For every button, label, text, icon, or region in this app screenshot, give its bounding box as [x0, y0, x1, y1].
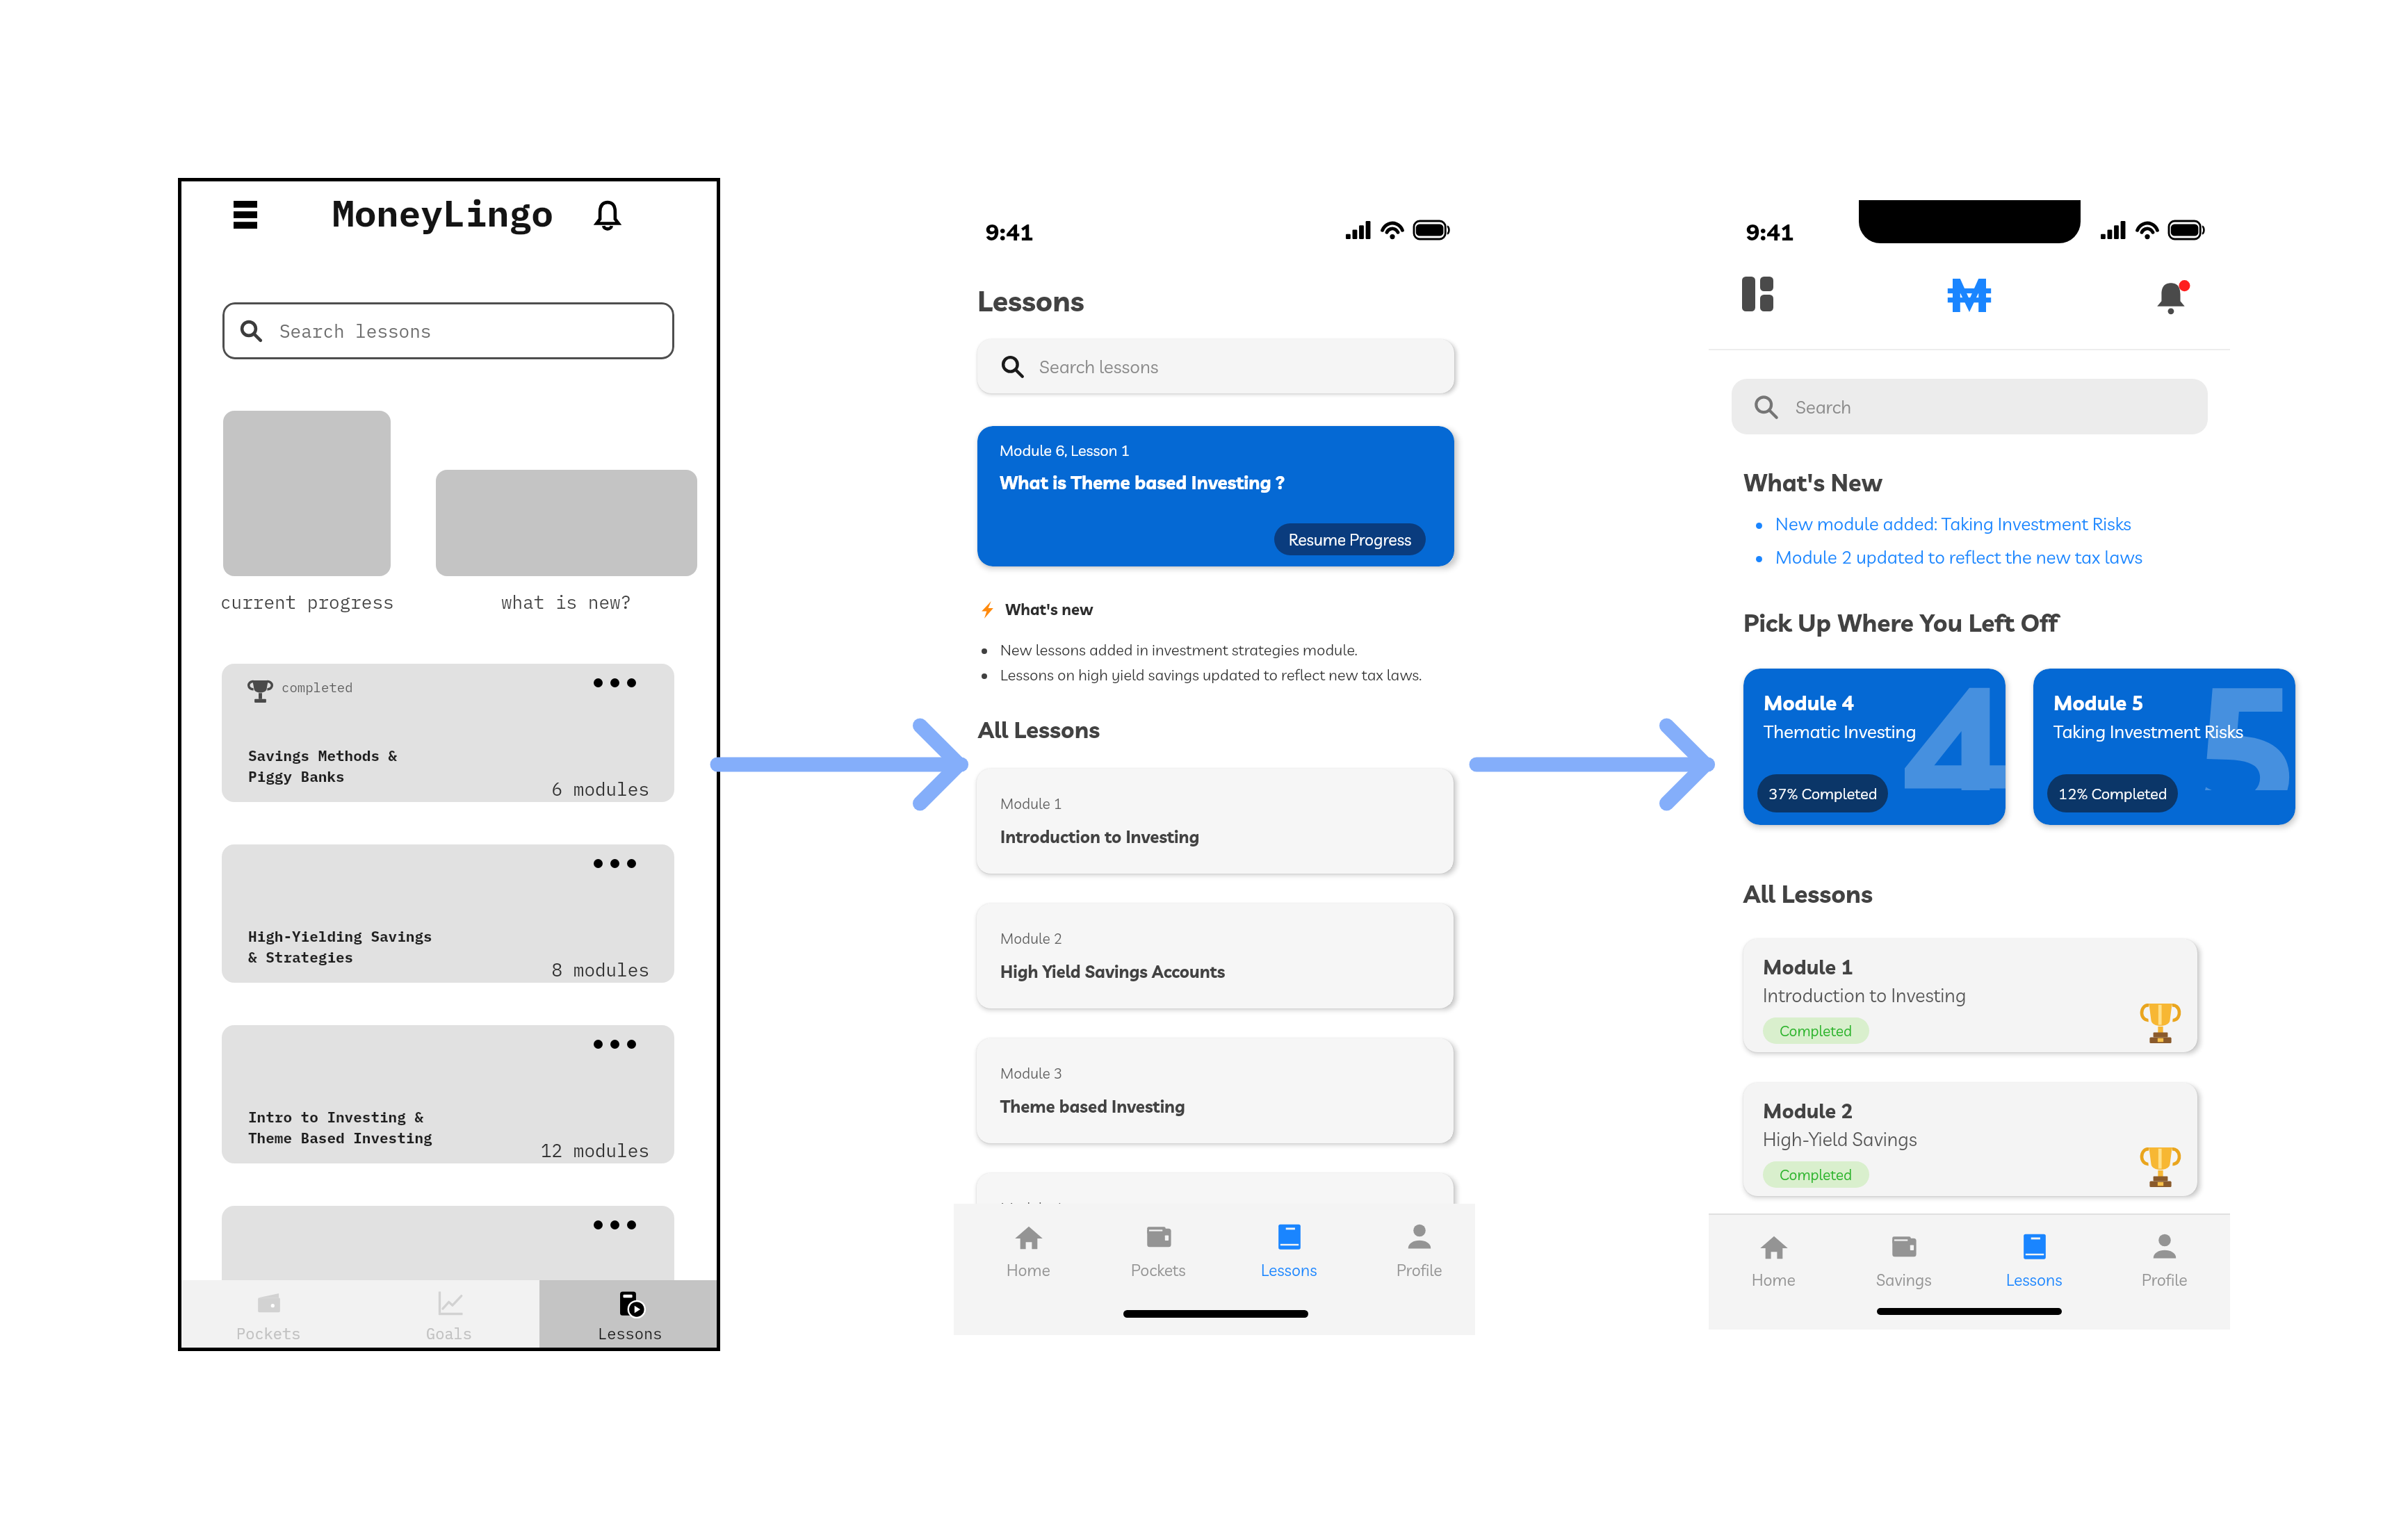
- staticText: Module 4: [1000, 1199, 1063, 1217]
- staticText: High Yield Savings Accounts: [1000, 961, 1226, 982]
- button[interactable]: [223, 411, 391, 576]
- staticText: Search lessons: [279, 319, 432, 343]
- button[interactable]: Module 1: [977, 769, 1454, 874]
- button[interactable]: Home: [963, 1223, 1093, 1292]
- staticText: Completed: [1780, 1166, 1853, 1184]
- button[interactable]: Module 3: [977, 1038, 1454, 1143]
- staticText: Search lessons: [1039, 355, 1159, 378]
- staticText: Module 2 updated to reflect the new tax …: [1775, 546, 2143, 569]
- button[interactable]: Search: [1732, 379, 2208, 434]
- staticText: 9:41: [986, 218, 1034, 246]
- staticText: Lessons on high yield savings updated to…: [1000, 665, 1422, 685]
- staticText: Module 6, Lesson 1: [1000, 441, 1130, 460]
- staticText: 5: [2189, 669, 2295, 790]
- staticText: Module 1: [1000, 794, 1063, 812]
- staticText: Module 2: [1763, 1098, 1853, 1123]
- button[interactable]: Lessons: [1969, 1232, 2099, 1302]
- staticText: High-Yielding Savings & Strategies: [248, 926, 432, 967]
- staticText: Savings: [1876, 1270, 1932, 1290]
- staticText: Profile: [2142, 1270, 2188, 1290]
- button[interactable]: [222, 1206, 674, 1344]
- button[interactable]: 5: [2033, 669, 2295, 825]
- staticText: completed: [282, 679, 353, 696]
- staticText: Intro to Investing & Theme Based Investi…: [248, 1107, 432, 1147]
- staticText: Introduction to Investing: [1000, 826, 1200, 847]
- staticText: Resume Progress: [1289, 530, 1412, 550]
- button[interactable]: Home: [1709, 1232, 1839, 1302]
- staticText: Lessons: [977, 283, 1084, 318]
- button[interactable]: Profile: [2099, 1232, 2230, 1302]
- staticText: Module 2: [1000, 929, 1063, 947]
- button[interactable]: Module 2: [1743, 1083, 2197, 1196]
- staticText: Module 3: [1000, 1064, 1063, 1082]
- button[interactable]: Resume Progress: [1274, 523, 1426, 555]
- button[interactable]: Notifications: [2154, 280, 2190, 318]
- staticText: what is new?: [501, 590, 632, 614]
- staticText: Introduction to Investing: [1763, 983, 1967, 1007]
- button[interactable]: completed: [222, 664, 674, 802]
- staticText: Savings Methods & Piggy Banks: [248, 746, 398, 786]
- staticText: Taking Investment Risks: [1000, 1231, 1195, 1252]
- staticText: 9:41: [1746, 218, 1794, 246]
- staticText: Thematic Investing: [1764, 720, 1917, 743]
- staticText: Pick Up Where You Left Off: [1743, 607, 2058, 638]
- staticText: Taking Investment Risks: [2053, 720, 2244, 743]
- staticText: What is Theme based Investing ?: [1000, 471, 1285, 494]
- button[interactable]: Module 2: [977, 903, 1454, 1008]
- button[interactable]: Savings: [1839, 1232, 1969, 1302]
- button[interactable]: 12% Completed: [2047, 774, 2178, 812]
- staticText: 37% Completed: [1768, 784, 1878, 803]
- button[interactable]: Profile: [1354, 1223, 1485, 1292]
- staticText: 6 modules: [475, 777, 649, 801]
- staticText: 12% Completed: [2058, 784, 2167, 803]
- staticText: Search: [1796, 395, 1852, 418]
- staticText: Completed: [1780, 1022, 1853, 1040]
- button[interactable]: High-Yielding Savings & Strategies: [222, 844, 674, 983]
- button[interactable]: Module 1: [1743, 939, 2197, 1052]
- staticText: 8 modules: [475, 958, 649, 981]
- staticText: 4: [1899, 669, 2006, 790]
- staticText: Lessons: [598, 1323, 662, 1343]
- button[interactable]: Module 4: [977, 1173, 1454, 1278]
- staticText: Home: [1007, 1260, 1050, 1280]
- button[interactable]: Search lessons: [222, 302, 674, 359]
- button[interactable]: Dashboard: [1742, 277, 1777, 311]
- button[interactable]: Notifications: [596, 200, 619, 231]
- button[interactable]: Pockets: [178, 1280, 359, 1351]
- button[interactable]: 37% Completed: [1757, 774, 1888, 812]
- staticText: All Lessons: [978, 715, 1100, 744]
- staticText: Module 1: [1763, 954, 1853, 979]
- button[interactable]: Intro to Investing & Theme Based Investi…: [222, 1025, 674, 1163]
- button[interactable]: Goals: [359, 1280, 539, 1351]
- staticText: Profile: [1397, 1260, 1442, 1280]
- staticText: MoneyLingo: [332, 189, 553, 237]
- staticText: Module 5: [2053, 690, 2144, 715]
- button[interactable]: Menu: [234, 201, 257, 229]
- staticText: Pockets: [1131, 1260, 1186, 1280]
- staticText: Pockets: [236, 1323, 301, 1343]
- button[interactable]: Search lessons: [977, 339, 1454, 393]
- staticText: Home: [1752, 1270, 1796, 1290]
- staticText: Lessons: [2006, 1270, 2063, 1290]
- staticText: Module 4: [1764, 690, 1854, 715]
- staticText: What's New: [1743, 468, 1882, 498]
- staticText: New lessons added in investment strategi…: [1000, 640, 1358, 660]
- staticText: Theme based Investing: [1000, 1096, 1185, 1117]
- staticText: Goals: [426, 1323, 473, 1343]
- staticText: 12 modules: [475, 1138, 649, 1162]
- button[interactable]: Pockets: [1093, 1223, 1223, 1292]
- button[interactable]: [436, 470, 697, 576]
- staticText: Lessons: [1261, 1260, 1317, 1280]
- staticText: current progress: [220, 590, 394, 614]
- staticText: What's new: [1005, 600, 1093, 619]
- button[interactable]: Module 6, Lesson 1: [977, 426, 1454, 566]
- staticText: High-Yield Savings: [1763, 1127, 1917, 1151]
- staticText: New module added: Taking Investment Risk…: [1775, 512, 2132, 535]
- button[interactable]: 4: [1743, 669, 2006, 825]
- staticText: All Lessons: [1743, 878, 1873, 909]
- button[interactable]: Lessons: [1223, 1223, 1354, 1292]
- button[interactable]: Lessons: [539, 1280, 720, 1351]
